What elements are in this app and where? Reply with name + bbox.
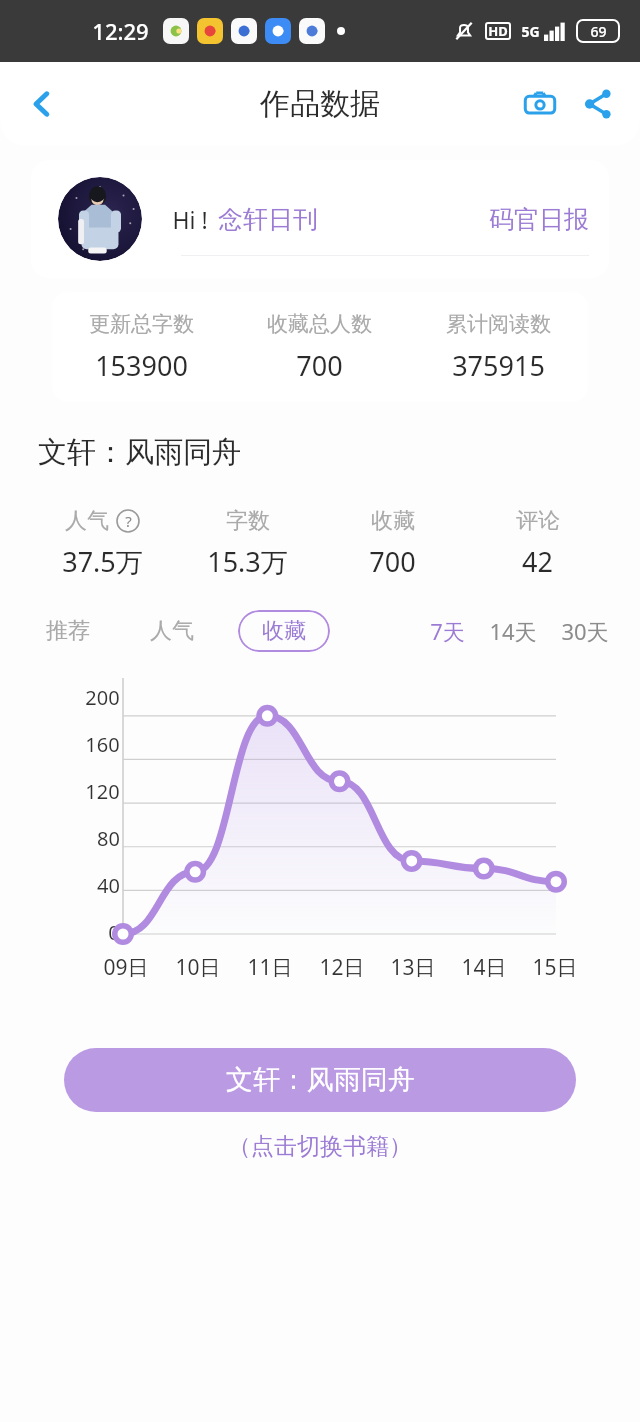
- staticText: HD: [488, 22, 508, 40]
- staticText: 200: [85, 684, 120, 711]
- button[interactable]: 评论: [465, 507, 610, 580]
- staticText: 30天: [561, 616, 609, 646]
- staticText: 12:29: [92, 16, 149, 46]
- staticText: 评论: [516, 507, 560, 535]
- staticText: 累计阅读数: [446, 311, 551, 337]
- staticText: 700: [296, 347, 343, 384]
- button[interactable]: 推荐: [40, 611, 96, 651]
- staticText: 14日: [461, 953, 507, 982]
- staticText: 11日: [247, 953, 293, 982]
- staticText: 153900: [95, 347, 188, 384]
- staticText: 5G: [521, 22, 540, 41]
- staticText: 7天: [430, 616, 465, 646]
- staticText: 码官日报: [489, 204, 589, 235]
- button[interactable]: 更新总字数: [52, 292, 588, 402]
- staticText: 80: [97, 825, 120, 852]
- staticText: 作品数据: [260, 85, 380, 123]
- staticText: 160: [85, 731, 120, 758]
- button[interactable]: 7天: [425, 610, 470, 652]
- button[interactable]: Back: [14, 76, 70, 132]
- staticText: 文轩：风雨同舟: [38, 434, 241, 471]
- staticText: 37.5万: [62, 543, 143, 580]
- button[interactable]: 人气: [30, 507, 175, 580]
- staticText: （点击切换书籍）: [228, 1132, 412, 1161]
- staticText: 人气: [150, 617, 194, 645]
- button[interactable]: 字数: [175, 507, 320, 580]
- staticText: Hi !: [172, 204, 208, 235]
- staticText: 念轩日刊: [218, 204, 318, 235]
- staticText: 09日: [103, 953, 149, 982]
- staticText: 收藏总人数: [267, 311, 372, 337]
- staticText: 120: [85, 778, 120, 805]
- staticText: 推荐: [46, 617, 90, 645]
- staticText: 人气: [65, 507, 109, 535]
- button[interactable]: 30天: [556, 610, 614, 652]
- staticText: 15.3万: [207, 543, 288, 580]
- staticText: 字数: [226, 507, 270, 535]
- staticText: 15日: [532, 953, 578, 982]
- staticText: 375915: [452, 347, 545, 384]
- staticText: ?: [125, 511, 132, 531]
- staticText: 10日: [175, 953, 221, 982]
- staticText: 40: [97, 872, 120, 899]
- staticText: 14天: [489, 616, 537, 646]
- button[interactable]: Hi !: [31, 160, 609, 278]
- button[interactable]: Share: [572, 78, 624, 130]
- staticText: 收藏: [262, 617, 306, 645]
- staticText: 0: [108, 919, 120, 946]
- staticText: 文轩：风雨同舟: [226, 1063, 415, 1097]
- staticText: 700: [369, 543, 416, 580]
- button[interactable]: 14天: [484, 610, 542, 652]
- button[interactable]: Camera: [514, 78, 566, 130]
- button[interactable]: 人气: [144, 611, 200, 651]
- button[interactable]: 收藏: [238, 610, 330, 652]
- staticText: 42: [522, 543, 553, 580]
- staticText: 13日: [390, 953, 436, 982]
- staticText: 收藏: [371, 507, 415, 535]
- staticText: 69: [590, 22, 607, 41]
- button[interactable]: 文轩：风雨同舟: [64, 1048, 576, 1112]
- staticText: 更新总字数: [89, 311, 194, 337]
- button[interactable]: （点击切换书籍）: [224, 1128, 416, 1165]
- button[interactable]: 收藏: [320, 507, 465, 580]
- staticText: 12日: [319, 953, 365, 982]
